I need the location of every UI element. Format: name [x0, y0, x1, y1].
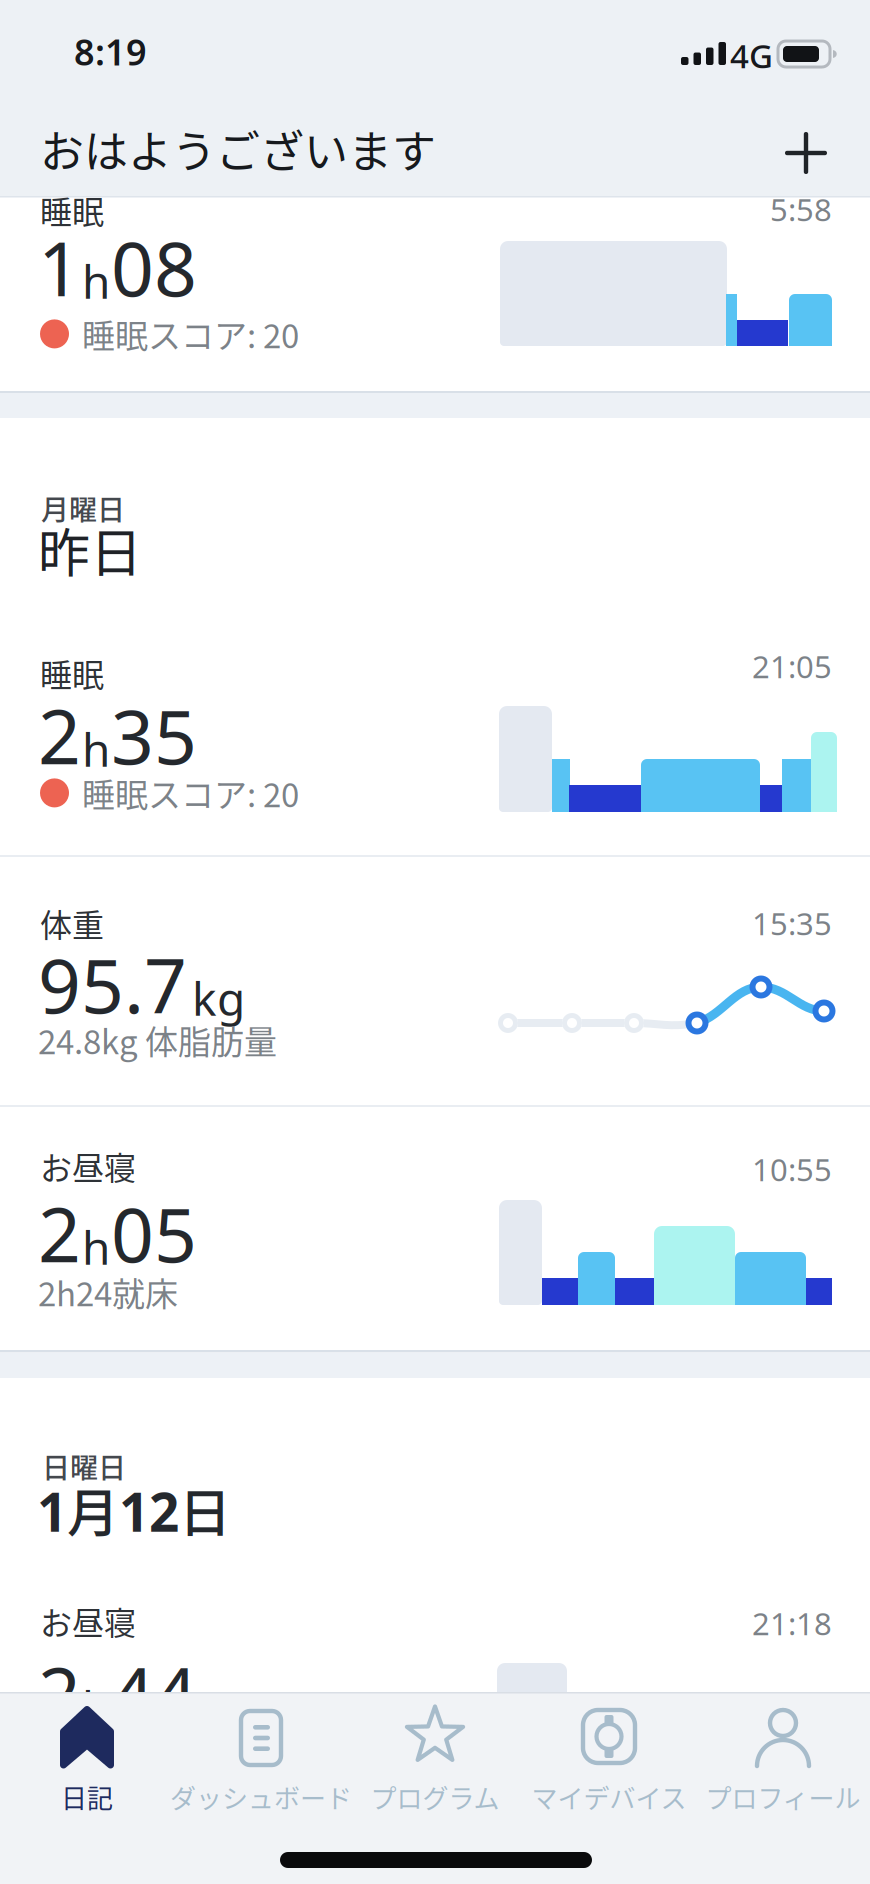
- staticText: 日記: [61, 1778, 113, 1816]
- staticText: おはようございます: [40, 117, 436, 181]
- button[interactable]: マイデバイス: [522, 1706, 696, 1816]
- button[interactable]: 追加: [777, 124, 835, 182]
- staticText: 05: [111, 1182, 197, 1284]
- staticText: 2: [38, 684, 81, 786]
- staticText: 44: [111, 1642, 197, 1744]
- button[interactable]: 体重: [0, 860, 870, 1105]
- staticText: 21:05: [752, 645, 832, 687]
- staticText: 睡眠: [40, 650, 104, 696]
- staticText: 2: [38, 1182, 81, 1284]
- staticText: 月: [67, 1472, 119, 1547]
- staticText: h: [82, 717, 110, 780]
- staticText: マイデバイス: [531, 1778, 686, 1816]
- staticText: 昨日: [38, 512, 142, 587]
- button[interactable]: お昼寝: [0, 1110, 870, 1350]
- staticText: 08: [111, 216, 197, 318]
- staticText: 5:58: [770, 188, 832, 230]
- staticText: 12: [119, 1475, 179, 1547]
- staticText: 35: [111, 684, 197, 786]
- staticText: h: [82, 1675, 110, 1738]
- staticText: お昼寝: [40, 1143, 136, 1189]
- button[interactable]: プログラム: [348, 1706, 522, 1816]
- button[interactable]: 睡眠: [0, 150, 870, 391]
- button[interactable]: プロフィール: [696, 1706, 870, 1816]
- button[interactable]: 睡眠: [0, 640, 870, 855]
- staticText: 睡眠スコア: 20: [82, 310, 299, 358]
- staticText: 8:19: [74, 27, 147, 76]
- staticText: 1: [38, 216, 81, 318]
- staticText: 10:55: [752, 1148, 832, 1190]
- staticText: 睡眠スコア: 20: [82, 769, 299, 817]
- staticText: 日曜日: [42, 1446, 126, 1486]
- staticText: 睡眠: [40, 187, 104, 233]
- button[interactable]: 日記: [0, 1706, 174, 1816]
- button[interactable]: ダッシュボード: [174, 1706, 348, 1816]
- staticText: h: [82, 249, 110, 312]
- staticText: 15:35: [752, 902, 832, 944]
- staticText: 2h24就床: [38, 1268, 178, 1316]
- staticText: プログラム: [370, 1778, 499, 1816]
- staticText: 24.8kg 体脂肪量: [38, 1016, 277, 1064]
- staticText: 95.7: [38, 933, 187, 1035]
- button[interactable]: お昼寝: [0, 1590, 870, 1750]
- staticText: お昼寝: [40, 1598, 136, 1644]
- staticText: ダッシュボード: [170, 1778, 352, 1816]
- staticText: 体重: [40, 900, 104, 946]
- staticText: 日: [179, 1472, 231, 1547]
- staticText: h: [82, 1215, 110, 1278]
- staticText: プロフィール: [705, 1778, 860, 1816]
- staticText: 4G: [730, 33, 773, 78]
- staticText: 21:18: [752, 1602, 832, 1644]
- staticText: 2: [38, 1642, 81, 1744]
- staticText: 月曜日: [41, 488, 125, 528]
- staticText: kg: [192, 966, 245, 1029]
- staticText: 1: [37, 1475, 67, 1547]
